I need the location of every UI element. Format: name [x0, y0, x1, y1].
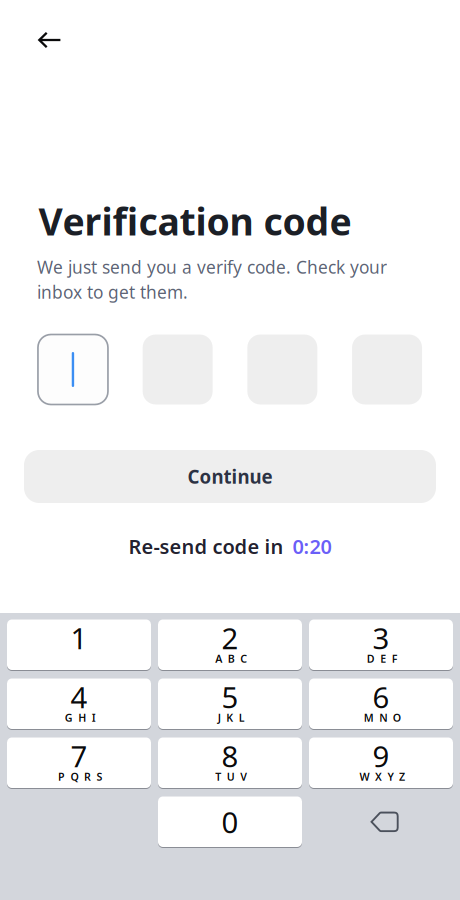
- staticText: ABC: [215, 652, 247, 666]
- button[interactable]: Re-send code in: [120, 527, 339, 565]
- staticText: 9: [372, 736, 389, 775]
- staticText: Verification code: [38, 196, 351, 246]
- staticText: We just send you a verify code. Check yo…: [37, 255, 387, 278]
- button[interactable]: 1: [7, 619, 151, 670]
- staticText: JKL: [218, 711, 245, 725]
- button[interactable]: 7: [7, 737, 151, 788]
- staticText: 6: [372, 677, 389, 716]
- button[interactable]: Continue: [24, 450, 436, 503]
- button[interactable]: Verification code digit 1: [38, 334, 108, 404]
- staticText: TUV: [215, 770, 247, 784]
- button[interactable]: 2: [158, 619, 302, 670]
- staticText: GHI: [65, 711, 96, 725]
- button[interactable]: 9: [309, 737, 453, 788]
- staticText: DEF: [367, 652, 398, 666]
- button[interactable]: Back: [22, 16, 78, 64]
- button[interactable]: 0: [158, 796, 302, 847]
- staticText: 1: [70, 618, 87, 657]
- button[interactable]: 4: [7, 678, 151, 729]
- staticText: 0:20: [292, 533, 331, 559]
- button[interactable]: 6: [309, 678, 453, 729]
- button[interactable]: 3: [309, 619, 453, 670]
- staticText: 0: [221, 802, 238, 841]
- staticText: Continue: [187, 464, 272, 489]
- staticText: WXYZ: [360, 770, 405, 784]
- staticText: inbox to get them.: [37, 280, 188, 303]
- staticText: 2: [221, 618, 238, 657]
- button[interactable]: 5: [158, 678, 302, 729]
- button[interactable]: Delete: [309, 796, 453, 847]
- staticText: 7: [70, 736, 87, 775]
- staticText: 3: [372, 618, 389, 657]
- staticText: Re-send code in: [128, 533, 283, 559]
- staticText: 5: [221, 677, 238, 716]
- staticText: PQRS: [58, 770, 102, 784]
- staticText: MNO: [364, 711, 401, 725]
- staticText: 4: [70, 677, 87, 716]
- staticText: 8: [221, 736, 238, 775]
- button[interactable]: 8: [158, 737, 302, 788]
